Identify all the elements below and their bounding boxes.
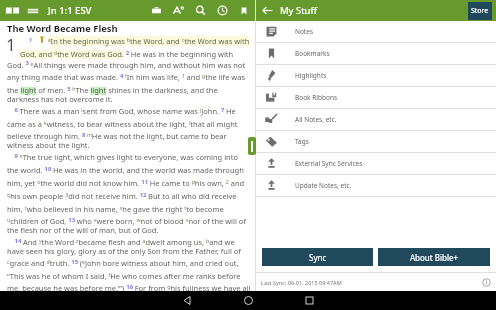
staticText: External Sync Services <box>295 159 363 168</box>
staticText: All Notes, etc. <box>295 115 337 124</box>
staticText: aIn the beginning was bthe Word, and cth… <box>20 36 251 59</box>
button[interactable]: Jn 1:1 ESV <box>46 4 94 17</box>
button[interactable]: Highlights <box>256 65 496 86</box>
button[interactable]: Sync <box>262 248 373 266</box>
button[interactable]: Library <box>5 3 20 18</box>
button[interactable]: Back <box>178 291 197 310</box>
staticText: Store <box>471 6 489 16</box>
button[interactable]: Book Ribbons <box>256 87 496 108</box>
button[interactable]: External Sync Services <box>256 153 496 174</box>
button[interactable]: Home <box>239 291 258 310</box>
staticText: About Bible+ <box>410 252 459 263</box>
staticText: Update Notes, etc. <box>295 181 352 190</box>
staticText: Highlights <box>295 71 327 80</box>
button[interactable]: Notes <box>256 21 496 42</box>
button[interactable]: Store <box>468 2 492 20</box>
staticText: Book Ribbons <box>295 93 338 102</box>
button[interactable]: Back <box>261 4 274 17</box>
button[interactable]: Text size <box>173 5 184 16</box>
button[interactable]: Info <box>482 278 491 287</box>
button[interactable]: Table of contents <box>26 4 40 18</box>
staticText: 1 <box>29 36 33 43</box>
staticText: 1 <box>6 33 16 56</box>
button[interactable]: All Notes, etc. <box>256 109 496 130</box>
button[interactable]: Resize panes <box>248 137 256 155</box>
button[interactable]: Update Notes, etc. <box>256 175 496 196</box>
staticText: Notes <box>295 27 313 36</box>
button[interactable]: Search <box>195 5 206 16</box>
button[interactable]: History <box>217 5 228 16</box>
button[interactable]: Bookmark <box>239 6 249 16</box>
staticText: Last Sync: 06-01, 2015 09:47AM <box>261 279 342 286</box>
staticText: God. 3 eAll things were made through him… <box>7 59 251 291</box>
staticText: Bookmarks <box>295 49 330 58</box>
button[interactable]: Tags <box>256 131 496 152</box>
staticText: Tags <box>295 137 309 146</box>
staticText: The Word Became Flesh <box>7 22 118 35</box>
button[interactable]: Study tools <box>151 5 162 16</box>
button[interactable]: Bookmarks <box>256 43 496 64</box>
button[interactable]: My Stuff <box>280 4 317 17</box>
staticText: Sync <box>309 252 327 263</box>
button[interactable]: Recent apps <box>300 291 319 310</box>
button[interactable]: About Bible+ <box>378 248 490 266</box>
